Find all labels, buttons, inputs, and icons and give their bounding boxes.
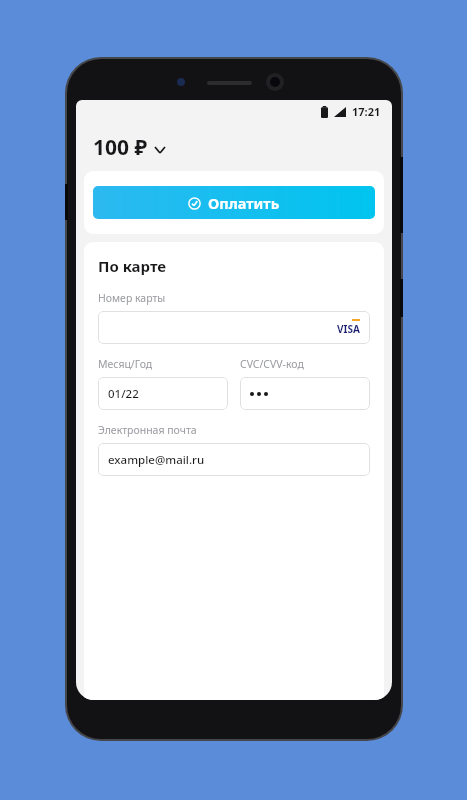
staticText: Электронная почта — [98, 423, 197, 437]
staticText: Оплатить — [208, 193, 280, 213]
staticText: 17:21 — [352, 104, 381, 119]
staticText: По карте — [98, 256, 167, 276]
button[interactable]: 100 ₽ — [93, 129, 165, 166]
staticText: 100 ₽ — [93, 133, 148, 162]
button[interactable]: Оплатить — [93, 186, 375, 219]
button[interactable]: 01/22 — [98, 377, 228, 410]
staticText: VISA — [337, 322, 360, 336]
staticText: example@mail.ru — [108, 452, 205, 468]
staticText: Месяц/Год — [98, 357, 153, 371]
button[interactable]: Visa — [98, 311, 370, 344]
staticText: CVC/CVV-код — [240, 357, 304, 371]
button[interactable]: example@mail.ru — [98, 443, 370, 476]
staticText: Номер карты — [98, 291, 166, 305]
staticText: 01/22 — [108, 386, 139, 402]
other: Visa — [337, 319, 360, 336]
button[interactable] — [240, 377, 370, 410]
